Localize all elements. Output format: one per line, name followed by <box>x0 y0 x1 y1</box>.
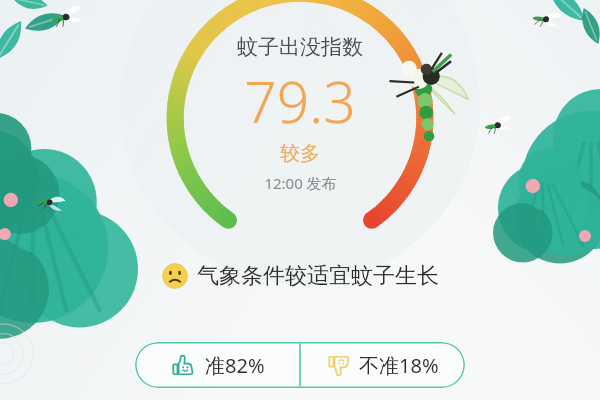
button[interactable]: 不准18% <box>300 342 465 388</box>
staticText: 较多 <box>280 141 320 166</box>
staticText: 准82% <box>205 352 265 379</box>
staticText: 气象条件较适宜蚊子生长 <box>197 262 439 290</box>
staticText: 蚊子出没指数 <box>237 34 363 60</box>
staticText: 12:00 发布 <box>264 173 337 193</box>
staticText: 79.3 <box>244 62 356 140</box>
staticText: 不准18% <box>359 352 439 379</box>
button[interactable]: 准82% <box>135 342 300 388</box>
